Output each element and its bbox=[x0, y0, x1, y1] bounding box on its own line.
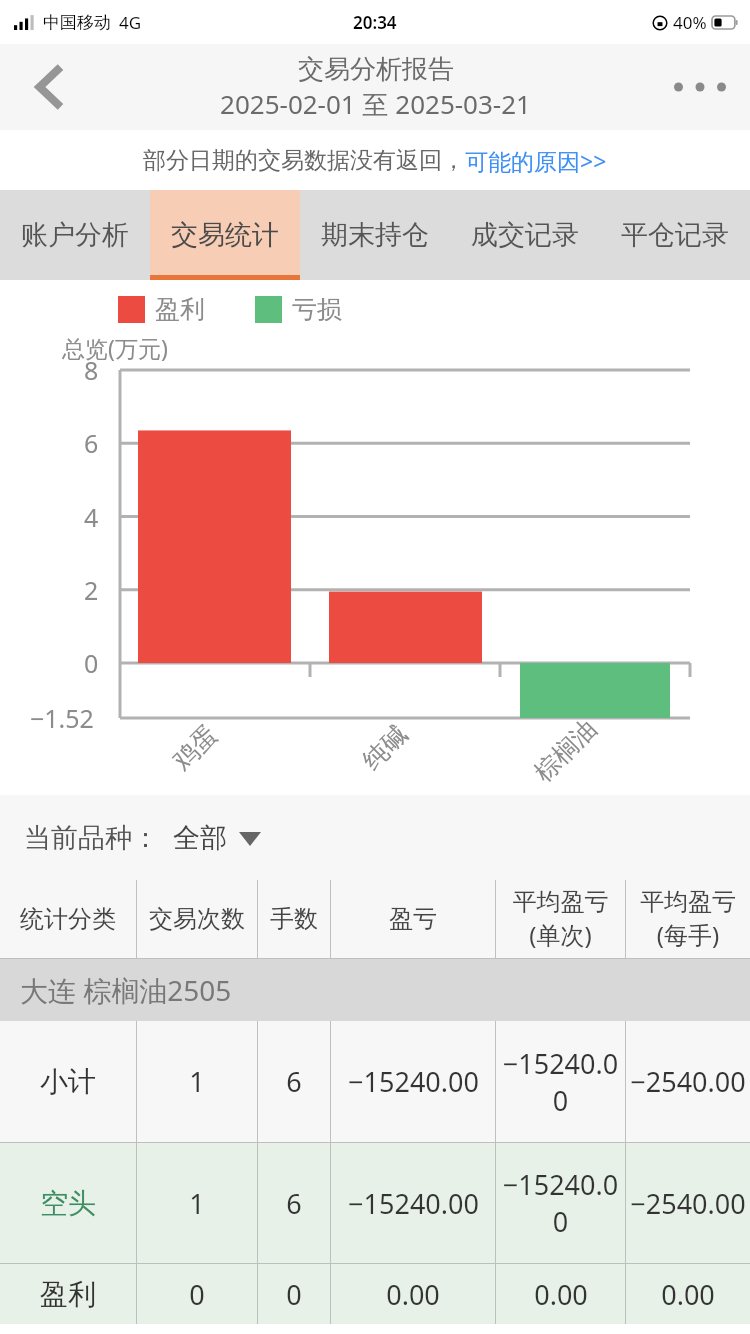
staticText: 期末持仓 bbox=[321, 218, 429, 252]
staticText: 当前品种： bbox=[24, 821, 159, 855]
staticText: 平仓记录 bbox=[621, 218, 729, 252]
staticText: 6 bbox=[286, 1185, 302, 1222]
staticText: 0 bbox=[84, 646, 99, 680]
staticText: 盈利 bbox=[155, 294, 205, 325]
staticText: 账户分析 bbox=[21, 218, 129, 252]
button[interactable]: Back bbox=[0, 44, 100, 130]
staticText: 可能的原因>> bbox=[465, 145, 607, 176]
staticText: −2540.00 bbox=[630, 1185, 746, 1222]
staticText: 大连 棕榈油2505 bbox=[20, 971, 232, 1009]
button[interactable]: 可能的原因>> bbox=[465, 145, 607, 176]
staticText: 中国移动 bbox=[43, 12, 111, 33]
button[interactable]: 空头 bbox=[0, 1143, 750, 1263]
staticText: 盈亏 bbox=[389, 904, 437, 934]
staticText: 20:34 bbox=[353, 11, 397, 34]
staticText: 纯碱 bbox=[356, 719, 414, 776]
staticText: 成交记录 bbox=[471, 218, 579, 252]
button[interactable]: 小计 bbox=[0, 1021, 750, 1142]
staticText: −1.52 bbox=[30, 701, 94, 735]
staticText: 盈利 bbox=[40, 1277, 96, 1312]
staticText: 0 bbox=[189, 1276, 205, 1313]
staticText: 1 bbox=[189, 1063, 205, 1100]
staticText: −15240.00 bbox=[499, 1045, 622, 1119]
staticText: 0.00 bbox=[386, 1276, 440, 1313]
staticText: 0.00 bbox=[661, 1276, 715, 1313]
staticText: −15240.00 bbox=[348, 1185, 479, 1222]
staticText: −15240.00 bbox=[348, 1063, 479, 1100]
button[interactable]: 成交记录 bbox=[450, 190, 600, 280]
staticText: 平均盈亏(每手) bbox=[629, 887, 747, 951]
staticText: 部分日期的交易数据没有返回， bbox=[143, 146, 465, 175]
staticText: 0 bbox=[286, 1276, 302, 1313]
staticText: 空头 bbox=[40, 1186, 96, 1221]
staticText: 0.00 bbox=[534, 1276, 588, 1313]
staticText: 小计 bbox=[40, 1064, 96, 1099]
staticText: 2025-02-01 至 2025-03-21 bbox=[220, 86, 531, 122]
staticText: 统计分类 bbox=[20, 904, 116, 934]
staticText: 交易次数 bbox=[149, 904, 245, 934]
button[interactable]: 期末持仓 bbox=[300, 190, 450, 280]
button[interactable]: 交易统计 bbox=[150, 190, 300, 280]
staticText: 2 bbox=[84, 573, 99, 607]
staticText: 棕榈油 bbox=[528, 713, 603, 788]
staticText: 交易统计 bbox=[171, 218, 279, 252]
button[interactable]: 账户分析 bbox=[0, 190, 150, 280]
staticText: −2540.00 bbox=[630, 1063, 746, 1100]
button[interactable]: More options bbox=[650, 44, 750, 130]
staticText: 6 bbox=[286, 1063, 302, 1100]
staticText: −15240.00 bbox=[499, 1166, 622, 1240]
staticText: 4 bbox=[84, 500, 99, 534]
staticText: 手数 bbox=[270, 904, 318, 934]
staticText: 交易分析报告 bbox=[298, 53, 454, 86]
button[interactable]: 平仓记录 bbox=[600, 190, 750, 280]
staticText: 亏损 bbox=[292, 294, 342, 325]
staticText: 4G bbox=[119, 11, 142, 34]
staticText: 40% bbox=[673, 11, 707, 34]
button[interactable]: 盈利 bbox=[0, 1264, 750, 1324]
staticText: 平均盈亏(单次) bbox=[499, 887, 622, 951]
staticText: 6 bbox=[84, 426, 99, 460]
button[interactable]: 全部 bbox=[173, 821, 261, 855]
staticText: 鸡蛋 bbox=[166, 719, 224, 776]
staticText: 8 bbox=[84, 353, 99, 387]
staticText: 1 bbox=[189, 1185, 205, 1222]
staticText: 总览(万元) bbox=[62, 332, 168, 363]
staticText: 全部 bbox=[173, 821, 227, 855]
